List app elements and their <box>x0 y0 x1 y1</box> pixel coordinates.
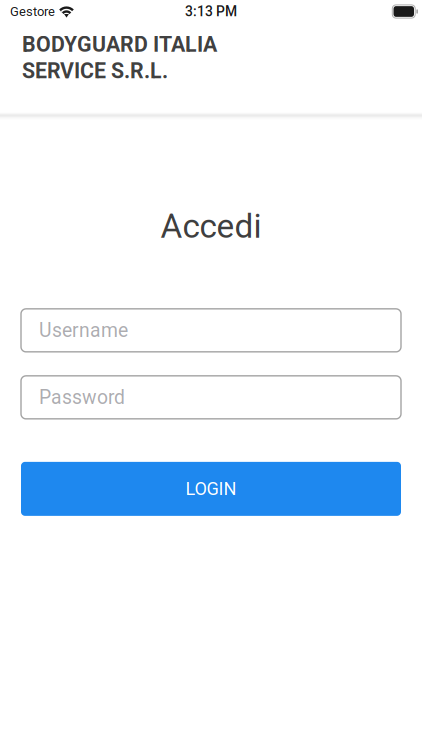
button[interactable]: Username <box>21 309 401 352</box>
staticText: Accedi <box>160 207 261 246</box>
staticText: Gestore <box>10 4 55 19</box>
button[interactable]: Password <box>21 376 401 419</box>
staticText: 3:13 PM <box>185 3 237 20</box>
staticText: SERVICE S.R.L. <box>22 58 168 83</box>
staticText: BODYGUARD ITALIA <box>22 32 217 57</box>
button[interactable]: LOGIN <box>21 462 401 516</box>
staticText: Username <box>39 319 128 342</box>
staticText: Password <box>39 386 125 409</box>
staticText: LOGIN <box>185 478 236 499</box>
